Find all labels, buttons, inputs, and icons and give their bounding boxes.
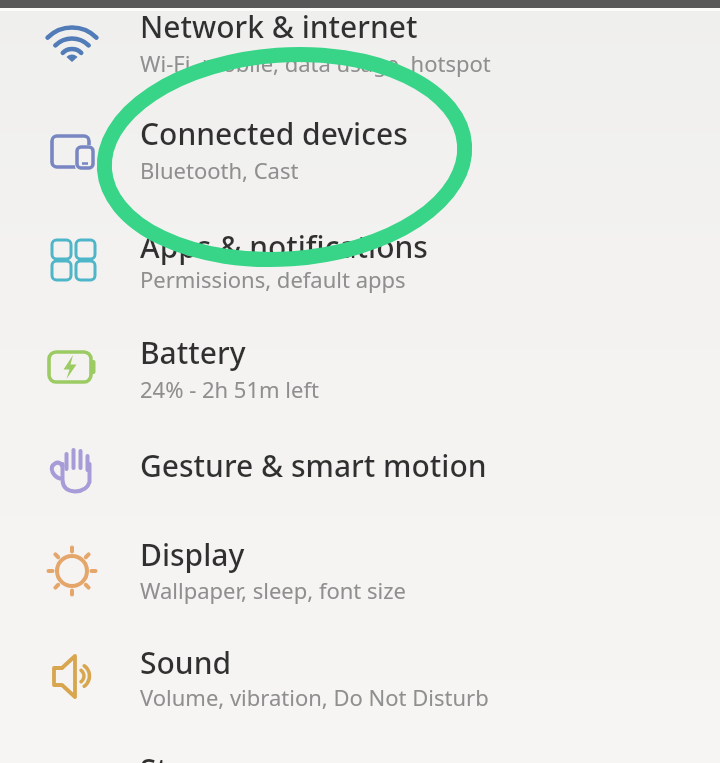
staticText: Volume, vibration, Do Not Disturb (140, 682, 489, 712)
staticText: Network & internet (140, 6, 418, 47)
staticText: Connected devices (140, 113, 408, 154)
staticText: 24% - 2h 51m left (140, 374, 319, 404)
button[interactable]: Gesture & smart motion (0, 445, 720, 521)
button[interactable]: Storage (0, 749, 720, 763)
staticText: Display (140, 534, 245, 575)
staticText: Gesture & smart motion (140, 445, 487, 486)
button[interactable]: Sound (0, 642, 720, 738)
staticText: Wallpaper, sleep, font size (140, 575, 406, 605)
staticText: Storage (140, 749, 252, 763)
staticText: Apps & notifications (140, 226, 428, 267)
staticText: Bluetooth, Cast (140, 155, 299, 185)
staticText: Battery (140, 332, 246, 373)
button[interactable]: Apps & notifications (0, 226, 720, 322)
button[interactable]: Battery (0, 332, 720, 428)
button[interactable]: Connected devices (0, 113, 720, 209)
button[interactable]: Network & internet (0, 6, 720, 102)
staticText: Permissions, default apps (140, 264, 406, 294)
button[interactable]: Display (0, 534, 720, 630)
staticText: Sound (140, 642, 232, 683)
staticText: Wi-Fi, mobile, data usage, hotspot (140, 48, 491, 78)
